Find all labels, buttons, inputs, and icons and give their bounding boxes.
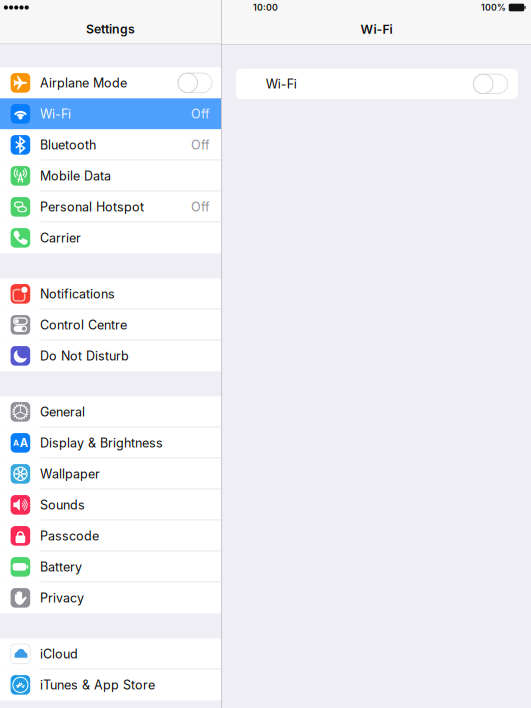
staticText: Carrier [40,230,81,245]
staticText: Privacy [40,590,84,605]
staticText: A [13,438,19,448]
staticText: Mobile Data [40,168,111,183]
staticText: A [20,436,28,450]
button[interactable]: iTunes & App Store [0,669,221,700]
button[interactable]: A [0,427,221,458]
staticText: Settings [86,21,135,36]
button[interactable]: Bluetooth [0,129,221,160]
staticText: Wi-Fi [360,22,392,37]
button[interactable]: Wi-Fi [236,69,518,99]
button[interactable]: Carrier [0,222,221,253]
button[interactable]: Wi-Fi [0,98,221,129]
button[interactable]: Privacy [0,582,221,613]
staticText: Wallpaper [40,466,100,481]
staticText: iTunes & App Store [40,677,155,692]
staticText: Off [191,199,210,214]
button[interactable]: Control Centre [0,309,221,340]
staticText: Personal Hotspot [40,199,144,214]
staticText: Bluetooth [40,137,96,152]
button[interactable]: Battery [0,551,221,582]
button[interactable]: General [0,396,221,427]
staticText: Display & Brightness [40,435,163,450]
staticText: Passcode [40,528,99,543]
button[interactable]: Notifications [0,278,221,309]
button[interactable]: Mobile Data [0,160,221,191]
staticText: 10:00 [253,2,278,13]
staticText: Control Centre [40,317,127,332]
button[interactable]: Passcode [0,520,221,551]
button[interactable]: iCloud [0,638,221,669]
button[interactable]: Airplane Mode [0,67,221,98]
staticText: Off [191,106,210,121]
staticText: General [40,404,85,419]
button[interactable]: Sounds [0,489,221,520]
button[interactable]: Personal Hotspot [0,191,221,222]
staticText: iCloud [40,646,78,661]
staticText: Notifications [40,286,115,301]
button[interactable]: Do Not Disturb [0,340,221,371]
staticText: Wi-Fi [40,106,71,121]
button[interactable]: Wallpaper [0,458,221,489]
staticText: 100% [481,2,506,13]
staticText: Airplane Mode [40,75,127,90]
staticText: Do Not Disturb [40,348,129,363]
staticText: Wi-Fi [266,76,297,91]
staticText: Sounds [40,497,85,512]
staticText: Off [191,137,210,152]
staticText: Battery [40,559,82,574]
